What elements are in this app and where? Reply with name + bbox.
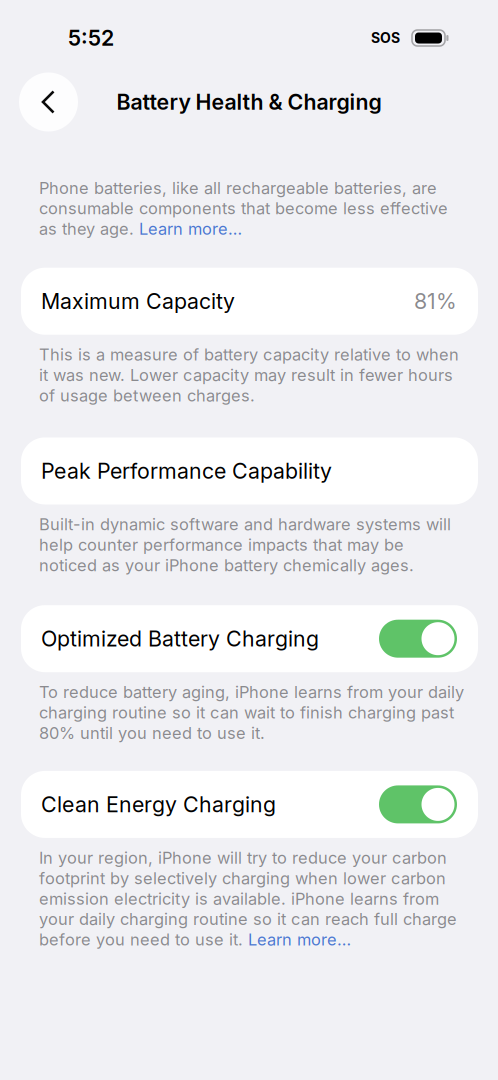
button[interactable]: Clean Energy Charging [21, 771, 478, 838]
staticText: Peak Performance Capability [41, 458, 332, 484]
staticText: SOS [371, 29, 400, 46]
button[interactable]: Peak Performance Capability [21, 437, 478, 504]
staticText: Clean Energy Charging [41, 791, 276, 817]
staticText: Maximum Capacity [41, 288, 235, 314]
button[interactable]: Back [19, 72, 78, 131]
staticText: 81% [414, 288, 457, 314]
staticText: Battery Health & Charging [116, 89, 381, 115]
staticText: Phone batteries, like all rechargeable b… [39, 178, 448, 239]
staticText: This is a measure of battery capacity re… [39, 345, 459, 405]
button[interactable]: Maximum Capacity [21, 268, 478, 335]
staticText: 5:52 [68, 25, 114, 51]
staticText: Built-in dynamic software and hardware s… [39, 514, 451, 575]
staticText: Optimized Battery Charging [41, 626, 319, 652]
button[interactable]: Optimized Battery Charging [21, 605, 478, 672]
staticText: To reduce battery aging, iPhone learns f… [39, 682, 464, 743]
staticText: In your region, iPhone will try to reduc… [39, 848, 457, 949]
